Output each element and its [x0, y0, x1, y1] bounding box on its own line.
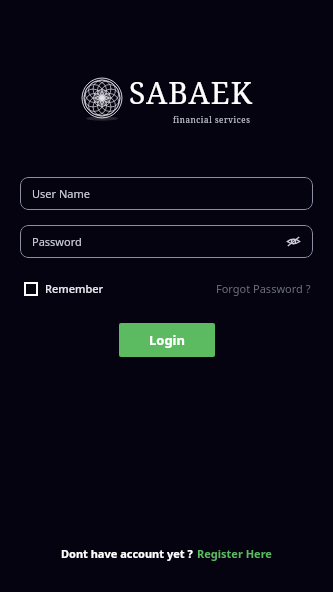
staticText: Password: [32, 234, 82, 249]
other: Sabaek logo: [81, 77, 123, 119]
button[interactable]: Register Here: [197, 546, 272, 561]
button[interactable]: Remember: [20, 278, 108, 299]
staticText: SABAEK: [129, 72, 253, 113]
staticText: Dont have account yet ?: [61, 546, 193, 561]
button[interactable]: Password: [20, 225, 313, 258]
staticText: Forgot Password ?: [216, 281, 311, 296]
staticText: User Name: [32, 186, 90, 201]
staticText: Register Here: [197, 546, 272, 561]
button[interactable]: Login: [119, 323, 215, 357]
staticText: Remember: [45, 281, 104, 296]
staticText: financial services: [173, 114, 251, 124]
staticText: Login: [149, 331, 185, 349]
button[interactable]: Forgot Password ?: [214, 277, 313, 300]
button[interactable]: User Name: [20, 177, 313, 210]
other: Show password: [286, 234, 301, 249]
